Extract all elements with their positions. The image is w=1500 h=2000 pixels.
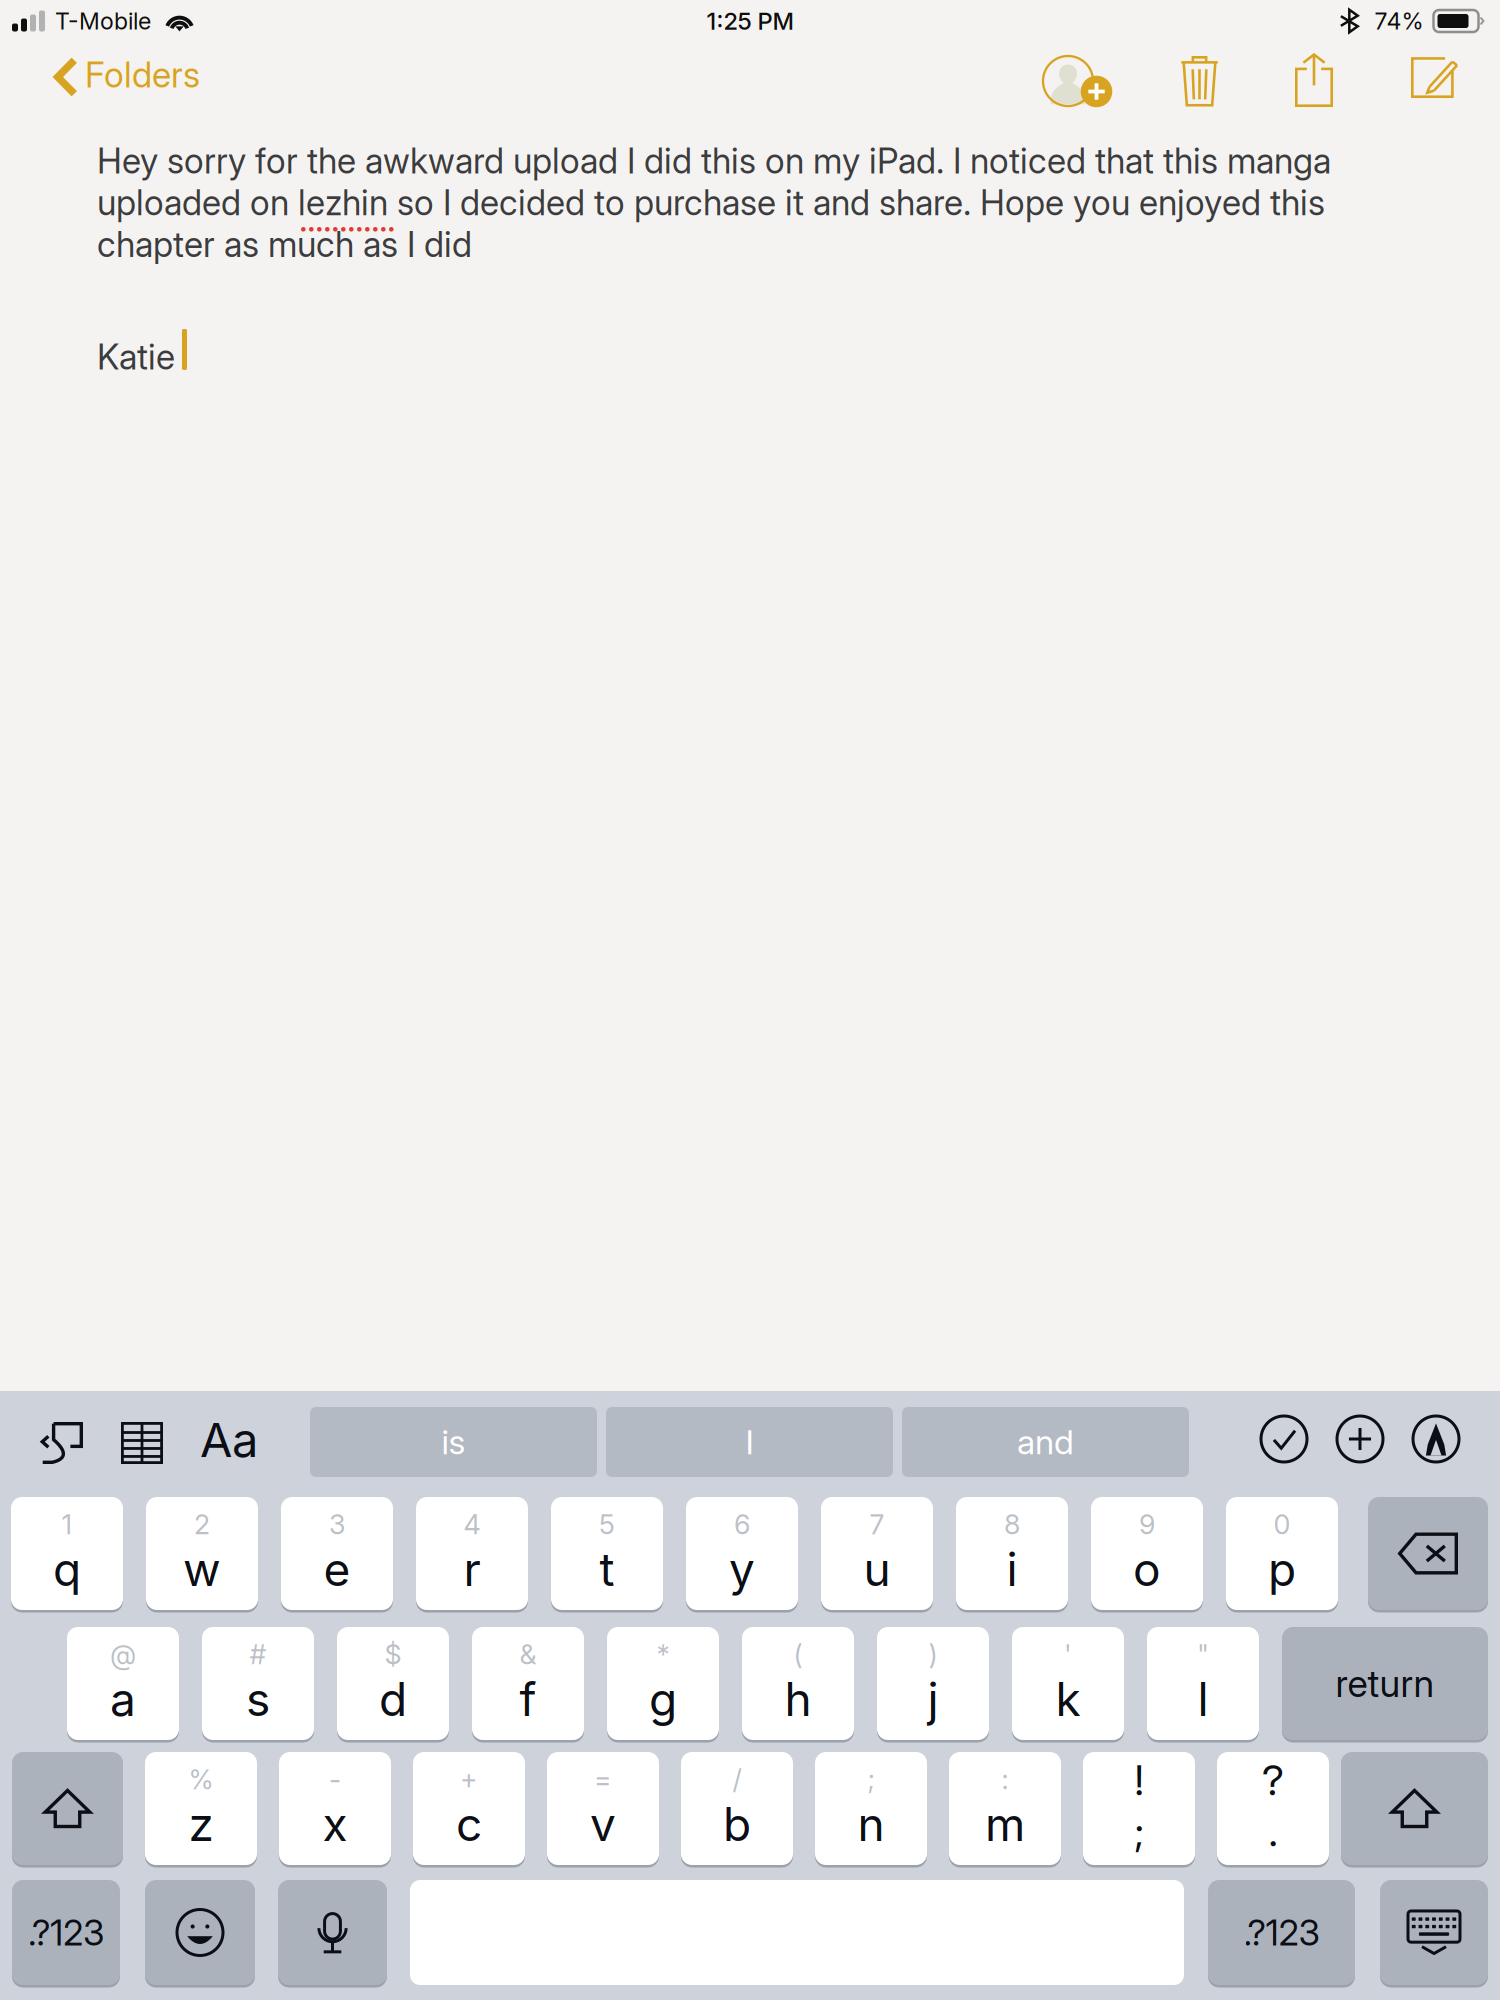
button[interactable]: Delete [1162, 38, 1237, 125]
button[interactable]: ) [877, 1627, 989, 1743]
staticText: + [460, 1763, 478, 1796]
staticText: .?123 [1243, 1911, 1319, 1954]
button[interactable]: Share [1277, 35, 1351, 125]
button[interactable]: 4 [416, 1497, 528, 1613]
staticText: i [1006, 1541, 1017, 1597]
staticText: Hey sorry for the awkward upload I did t… [97, 140, 1331, 265]
button[interactable]: and [902, 1407, 1189, 1477]
button[interactable]: " [1147, 1627, 1259, 1743]
button[interactable]: 8 [956, 1497, 1068, 1613]
staticText: ! [1134, 1755, 1143, 1805]
staticText: & [519, 1638, 536, 1671]
button[interactable]: @ [67, 1627, 179, 1743]
button[interactable]: = [547, 1752, 659, 1868]
button[interactable]: $ [337, 1627, 449, 1743]
button[interactable]: Add People [1031, 44, 1123, 136]
button[interactable]: Hide Keyboard [1380, 1880, 1488, 1988]
staticText: e [323, 1541, 350, 1597]
button[interactable]: Format [190, 1413, 268, 1467]
button[interactable]: ! [1083, 1752, 1195, 1868]
button[interactable]: Folders [40, 42, 214, 112]
button[interactable]: Markup [1406, 1412, 1466, 1466]
staticText: a [110, 1671, 136, 1727]
staticText: 74% [1374, 7, 1423, 35]
staticText: T-Mobile [55, 7, 151, 35]
staticText: b [723, 1796, 751, 1852]
staticText: 3 [329, 1508, 345, 1541]
staticText: o [1133, 1541, 1161, 1597]
button[interactable]: + [413, 1752, 525, 1868]
staticText: 7 [869, 1508, 884, 1541]
button[interactable]: ' [1012, 1627, 1124, 1743]
staticText: return [1335, 1661, 1434, 1706]
staticText: ; [1134, 1805, 1143, 1856]
button[interactable]: - [279, 1752, 391, 1868]
button[interactable]: Shift [12, 1752, 123, 1868]
staticText: u [863, 1541, 890, 1597]
staticText: 2 [194, 1508, 210, 1541]
button[interactable]: .?123 [1208, 1880, 1355, 1988]
staticText: m [985, 1796, 1025, 1852]
button[interactable]: 0 [1226, 1497, 1338, 1613]
button[interactable]: ; [815, 1752, 927, 1868]
staticText: d [379, 1671, 407, 1727]
staticText: t [599, 1541, 614, 1597]
button[interactable]: 6 [686, 1497, 798, 1613]
button[interactable]: & [472, 1627, 584, 1743]
staticText: 5 [599, 1508, 615, 1541]
button[interactable]: Table [112, 1416, 172, 1470]
button[interactable]: 3 [281, 1497, 393, 1613]
staticText: ( [793, 1638, 802, 1671]
button[interactable]: 2 [146, 1497, 258, 1613]
button[interactable]: Checklist [1254, 1412, 1314, 1466]
button[interactable]: 7 [821, 1497, 933, 1613]
button[interactable]: 1 [11, 1497, 123, 1613]
staticText: p [1268, 1541, 1296, 1597]
staticText: I [745, 1421, 753, 1462]
button[interactable]: : [949, 1752, 1061, 1868]
staticText: is [441, 1421, 465, 1462]
button[interactable]: # [202, 1627, 314, 1743]
staticText: c [456, 1796, 482, 1852]
button[interactable]: .?123 [12, 1880, 120, 1988]
button[interactable]: Add Attachment [1330, 1412, 1390, 1466]
staticText: ' [1064, 1638, 1072, 1671]
staticText: k [1055, 1671, 1080, 1727]
button[interactable]: Compose [1393, 34, 1476, 116]
staticText: z [188, 1796, 213, 1852]
staticText: .?123 [28, 1911, 104, 1954]
button[interactable]: ( [742, 1627, 854, 1743]
staticText: $ [384, 1638, 401, 1671]
button[interactable]: / [681, 1752, 793, 1868]
button[interactable]: is [310, 1407, 597, 1477]
button[interactable]: return [1282, 1627, 1488, 1743]
button[interactable]: Shift [1341, 1752, 1488, 1868]
button[interactable]: I [606, 1407, 893, 1477]
staticText: j [927, 1671, 938, 1727]
staticText: . [1268, 1805, 1277, 1856]
staticText: 6 [734, 1508, 750, 1541]
button[interactable]: Delete [1368, 1497, 1488, 1613]
staticText: 1 [61, 1508, 72, 1541]
staticText: r [463, 1541, 480, 1597]
staticText: w [183, 1541, 221, 1597]
button[interactable]: 9 [1091, 1497, 1203, 1613]
staticText: f [519, 1671, 536, 1727]
staticText: Katie [97, 336, 175, 378]
button[interactable]: Undo [32, 1416, 92, 1470]
button[interactable]: * [607, 1627, 719, 1743]
button[interactable]: Dictate [278, 1880, 387, 1988]
button[interactable]: 5 [551, 1497, 663, 1613]
button[interactable]: Emoji [145, 1880, 255, 1988]
staticText: @ [110, 1638, 136, 1671]
staticText: / [732, 1763, 741, 1796]
staticText: ? [1262, 1755, 1284, 1805]
button[interactable]: % [145, 1752, 257, 1868]
staticText: * [656, 1638, 669, 1671]
staticText: 4 [463, 1508, 480, 1541]
staticText: 9 [1139, 1508, 1155, 1541]
button[interactable]: ? [1217, 1752, 1329, 1868]
staticText: : [1001, 1763, 1008, 1796]
staticText: and [1017, 1421, 1074, 1462]
